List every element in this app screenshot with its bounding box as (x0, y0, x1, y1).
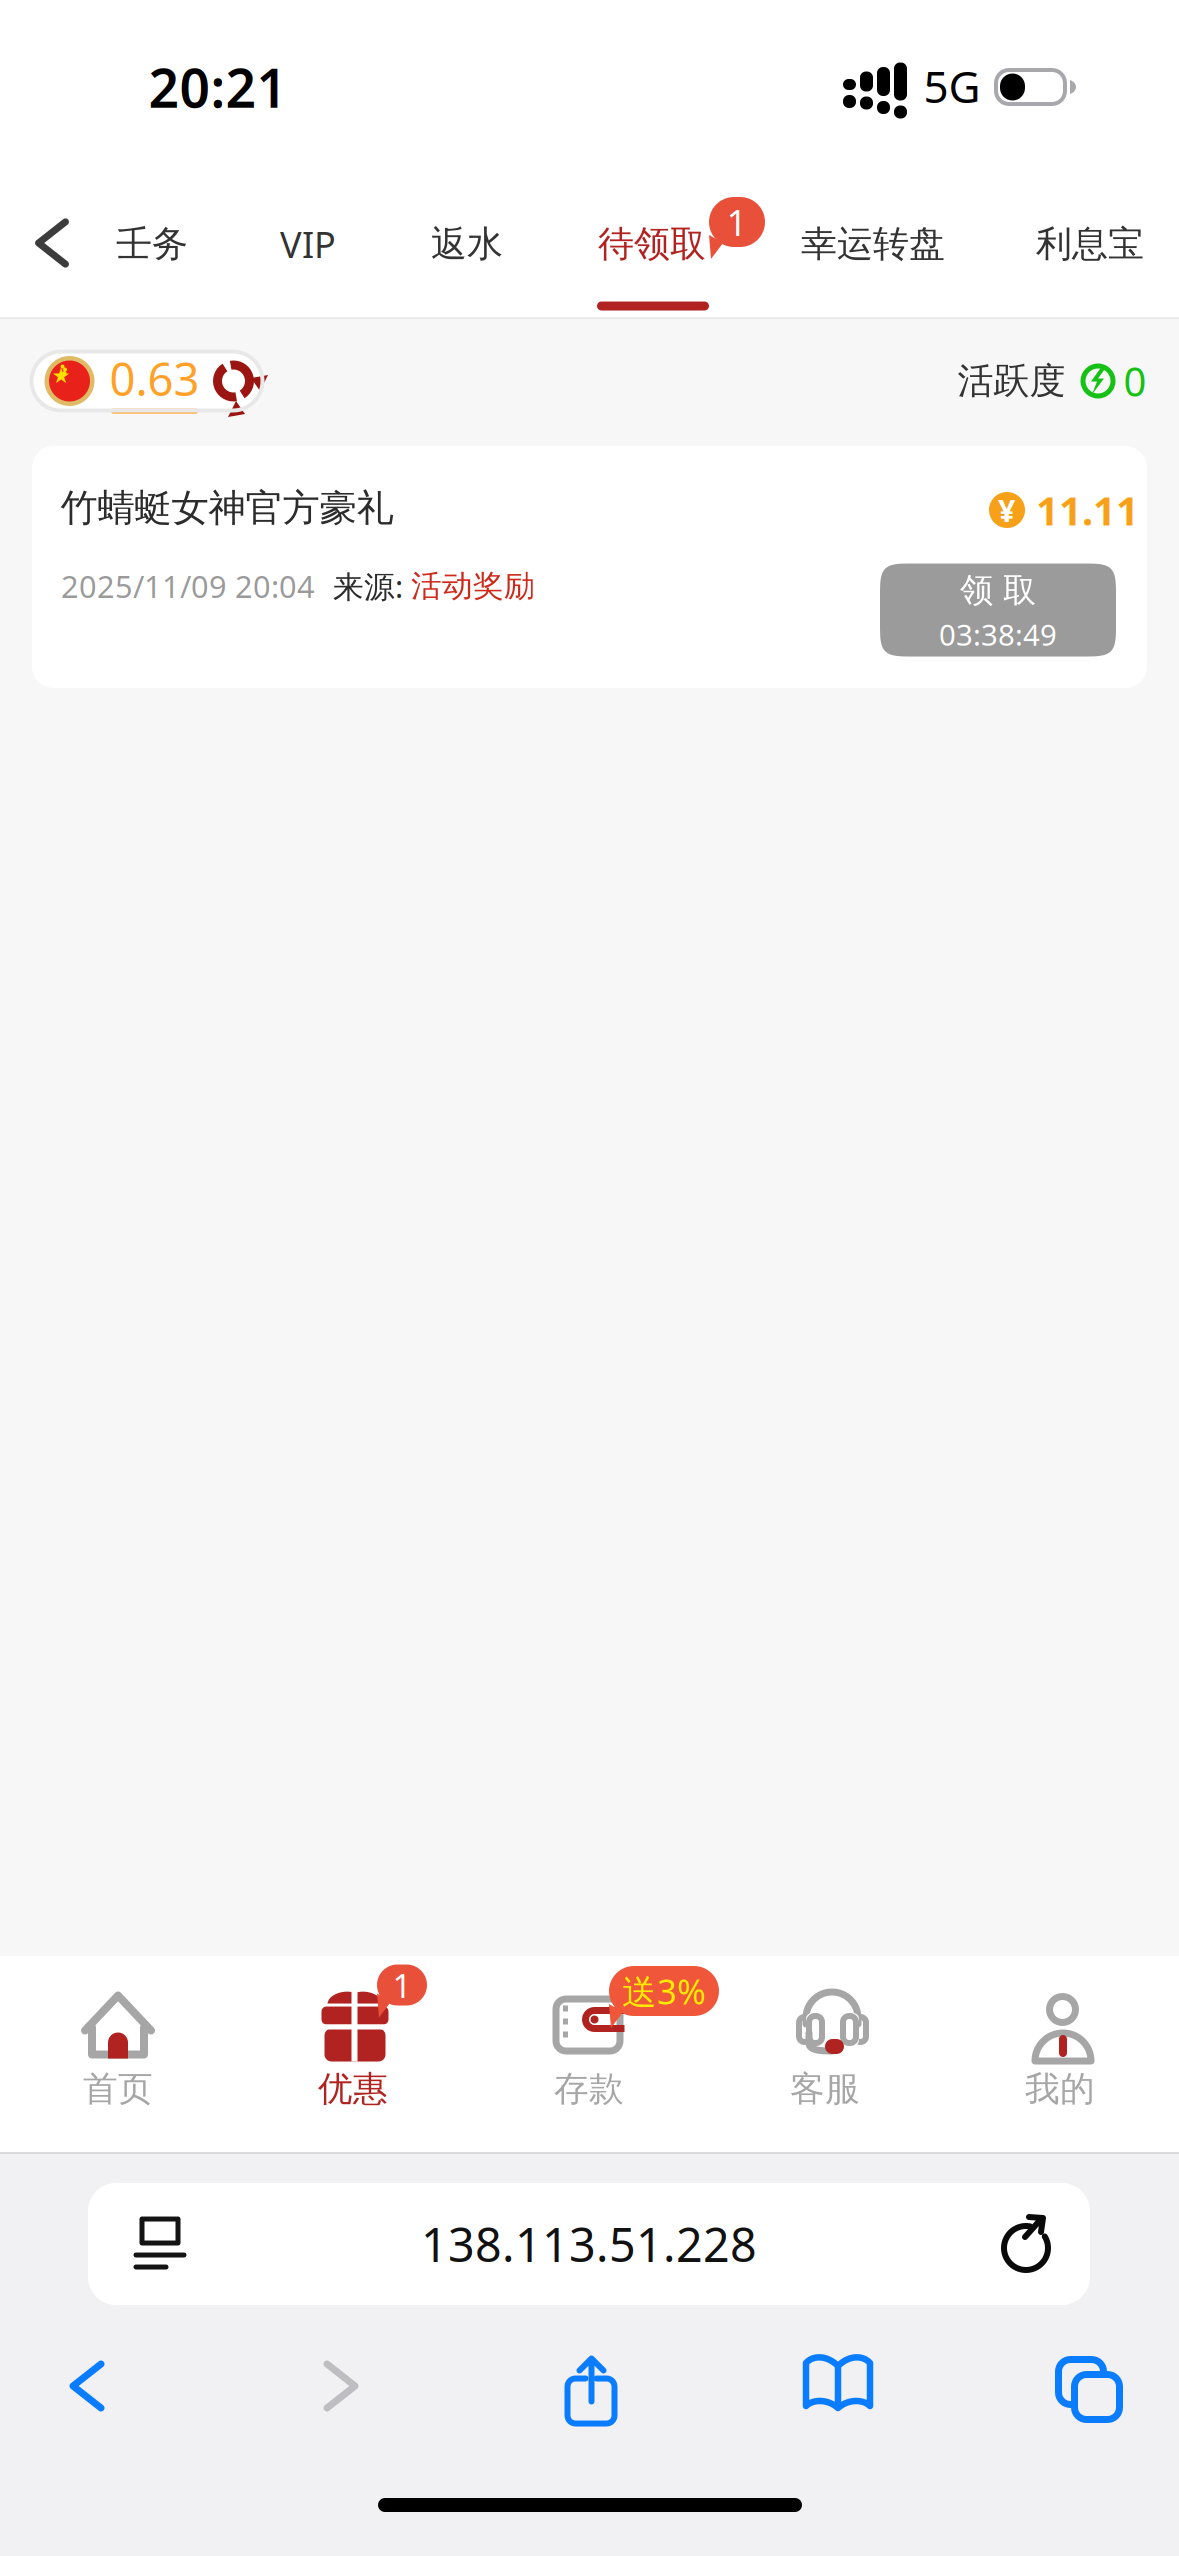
button[interactable]: 我的 (942, 1991, 1177, 2187)
button[interactable]: 客服 (707, 1991, 942, 2187)
button[interactable]: Reload (968, 2183, 1088, 2305)
staticText: 0 (1123, 354, 1146, 407)
staticText: 1 (726, 198, 747, 246)
staticText: 竹蜻蜓女神官方豪礼 (60, 485, 393, 531)
staticText: 首页 (83, 2068, 153, 2110)
staticText: 1 (392, 1963, 411, 2007)
button[interactable]: 优惠 (235, 1991, 470, 2187)
staticText: ¥ (998, 490, 1016, 530)
button[interactable]: Forward (251, 2326, 431, 2446)
button[interactable]: 首页 (0, 1991, 235, 2187)
staticText: 幸运转盘 (801, 222, 945, 266)
button[interactable]: Back (0, 2326, 177, 2446)
button[interactable]: Bookmarks (748, 2323, 928, 2443)
button[interactable]: 返水 (367, 161, 567, 327)
button[interactable]: Share (500, 2320, 680, 2440)
button[interactable]: Back (4, 188, 100, 298)
staticText: 返水 (431, 222, 503, 266)
staticText: 5G (923, 57, 980, 115)
button[interactable]: ★ (29, 349, 264, 412)
staticText: 存款 (554, 2068, 624, 2110)
button[interactable]: 幸运转盘 (773, 161, 973, 327)
button[interactable]: Page settings (100, 2183, 220, 2305)
staticText: 138.113.51.228 (421, 2213, 757, 2275)
button[interactable]: 利息宝 (990, 161, 1179, 327)
button[interactable]: 待领取 (552, 161, 752, 327)
staticText: 我的 (1025, 2068, 1095, 2110)
staticText: 壬务 (116, 222, 188, 266)
staticText: 客服 (790, 2068, 860, 2110)
staticText: 0.63 (109, 348, 199, 409)
staticText: 待领取 (598, 222, 706, 266)
button[interactable]: 存款 (471, 1991, 706, 2187)
button[interactable]: VIP (208, 161, 408, 327)
staticText: VIP (280, 220, 336, 268)
staticText: 20:21 (148, 52, 287, 122)
button[interactable]: Tabs (991, 2322, 1171, 2442)
staticText: 领 取 (960, 570, 1036, 611)
staticText: 2025/11/09 20:04 (61, 566, 315, 606)
staticText: 优惠 (318, 2068, 388, 2110)
staticText: 活跃度 (957, 359, 1065, 403)
staticText: 利息宝 (1036, 222, 1144, 266)
staticText: 活动奖励 (411, 567, 535, 605)
staticText: 11.11 (1036, 483, 1139, 536)
button[interactable]: 领 取 (880, 563, 1116, 656)
button[interactable]: 壬务 (52, 161, 252, 327)
staticText: 来源: (315, 566, 411, 606)
staticText: ★ (51, 363, 70, 388)
staticText: 送3% (622, 1968, 706, 2014)
staticText: 03:38:49 (939, 615, 1057, 654)
